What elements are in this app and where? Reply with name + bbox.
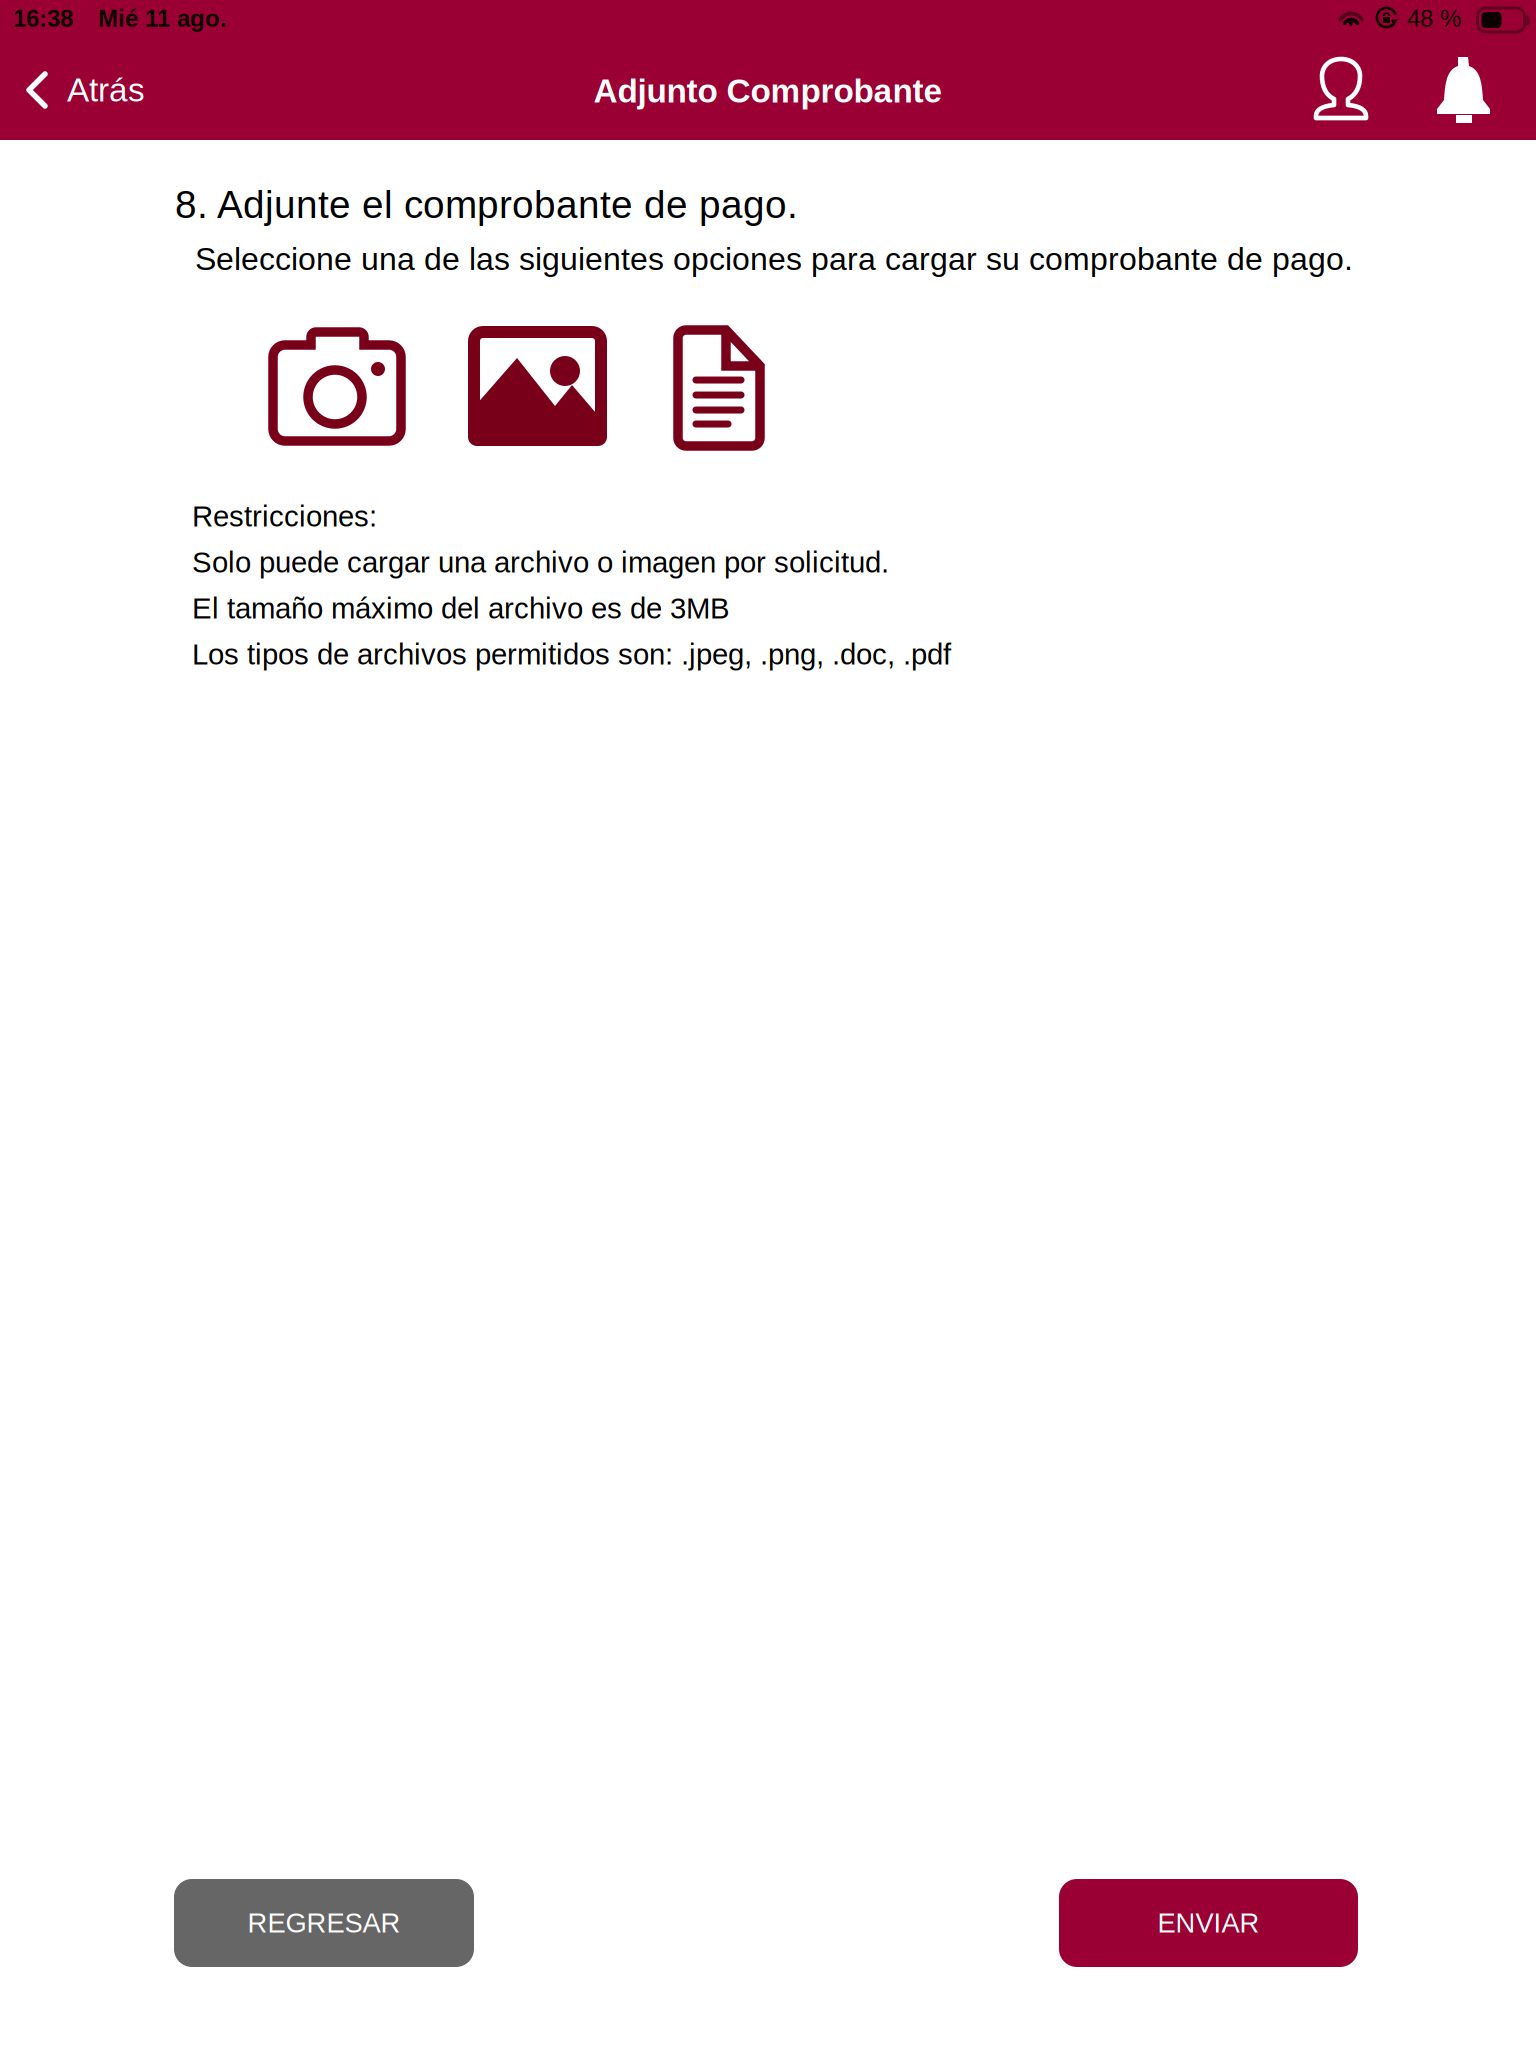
- button[interactable]: Elegir imagen: [468, 326, 607, 446]
- staticText: Atrás: [67, 71, 145, 109]
- button[interactable]: Atrás: [0, 43, 163, 137]
- staticText: Restricciones:: [192, 500, 377, 533]
- staticText: Solo puede cargar una archivo o imagen p…: [192, 546, 889, 579]
- staticText: Mié 11 ago.: [98, 5, 227, 32]
- staticText: Adjunto Comprobante: [593, 72, 942, 110]
- staticText: REGRESAR: [247, 1908, 400, 1938]
- staticText: 8. Adjunte el comprobante de pago.: [175, 183, 798, 226]
- button[interactable]: Notificaciones: [1417, 41, 1511, 135]
- button[interactable]: Tomar foto: [268, 326, 406, 446]
- button[interactable]: ENVIAR: [1059, 1879, 1358, 1967]
- staticText: Seleccione una de las siguientes opcione…: [195, 241, 1353, 277]
- staticText: 16:38: [13, 5, 73, 32]
- staticText: El tamaño máximo del archivo es de 3MB: [192, 592, 730, 625]
- staticText: ENVIAR: [1157, 1908, 1259, 1938]
- button[interactable]: REGRESAR: [174, 1879, 474, 1967]
- staticText: 48 %: [1407, 5, 1461, 32]
- staticText: Los tipos de archivos permitidos son: .j…: [192, 638, 951, 671]
- button[interactable]: Perfil: [1294, 41, 1388, 135]
- button[interactable]: Elegir archivo: [672, 324, 766, 452]
